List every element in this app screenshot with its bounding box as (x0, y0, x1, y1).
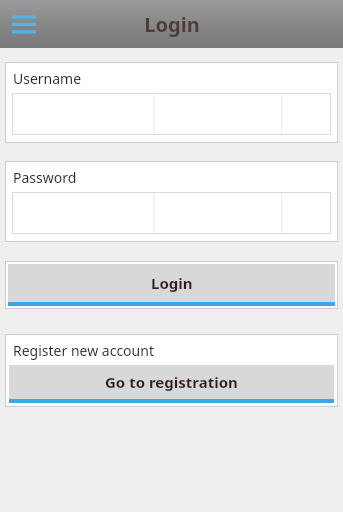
button[interactable]: Password input field (12, 192, 331, 234)
staticText: Username (13, 69, 82, 88)
button[interactable]: Go to registration (9, 365, 334, 403)
staticText: Go to registration (105, 372, 238, 392)
staticText: Password (13, 168, 77, 187)
staticText: Login (151, 273, 193, 293)
button[interactable]: Open navigation menu (10, 8, 38, 40)
staticText: Login (144, 11, 200, 38)
button[interactable]: Username input field (12, 93, 331, 135)
button[interactable]: Login (8, 264, 335, 306)
staticText: Register new account (13, 341, 154, 360)
